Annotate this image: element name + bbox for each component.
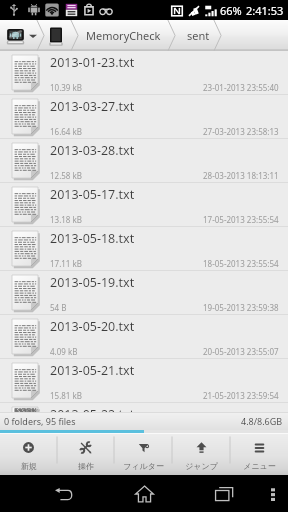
button[interactable]: MemoryCheck — [81, 20, 166, 51]
staticText: 2013-05-17.txt — [50, 186, 135, 203]
button[interactable]: 2013-03-28.txt — [0, 139, 288, 183]
button[interactable]: フィルター — [114, 434, 172, 475]
staticText: 2013-05-21.txt — [50, 362, 135, 379]
button[interactable]: ジャンプ — [172, 434, 230, 475]
button[interactable]: 2013-01-23.txt — [0, 51, 288, 95]
button[interactable]: 新規 — [0, 434, 57, 475]
staticText: 操作 — [78, 461, 94, 471]
button[interactable]: Back — [46, 479, 82, 509]
button[interactable]: 2013-05-17.txt — [0, 183, 288, 227]
button[interactable]: More options — [262, 479, 284, 509]
staticText: 4.09 kB — [50, 346, 78, 357]
staticText: 2013-03-27.txt — [50, 98, 135, 115]
staticText: 0 folders, 95 files — [4, 415, 76, 427]
staticText: ジャンプ — [185, 461, 218, 471]
staticText: 2013-05-18.txt — [50, 230, 135, 247]
staticText: 新規 — [21, 461, 37, 471]
staticText: 16.64 kB — [50, 126, 82, 137]
button[interactable]: Device storage — [48, 25, 64, 47]
button[interactable]: 2013-05-18.txt — [0, 227, 288, 271]
button[interactable]: メニュー — [230, 434, 288, 475]
button[interactable]: 操作 — [57, 434, 114, 475]
staticText: 66% — [220, 3, 242, 18]
staticText: MemoryCheck — [86, 28, 161, 43]
button[interactable]: Choose storage — [27, 30, 38, 41]
staticText: 2013-03-28.txt — [50, 142, 135, 159]
staticText: 19-05-2013 23:59:38 — [203, 302, 279, 313]
staticText: sent — [187, 28, 210, 43]
staticText: 18-05-2013 23:55:54 — [203, 258, 279, 269]
button[interactable]: 2013-05-19.txt — [0, 271, 288, 315]
staticText: 2:41:53 — [246, 3, 284, 18]
staticText: 27-03-2013 23:58:13 — [203, 126, 279, 137]
staticText: フィルター — [123, 461, 164, 471]
staticText: 9.21 kB — [50, 434, 78, 443]
button[interactable]: 2013-05-21.txt — [0, 359, 288, 403]
staticText: 2013-05-20.txt — [50, 318, 135, 335]
button[interactable]: Storage root — [5, 26, 25, 46]
staticText: 54 B — [50, 302, 67, 313]
staticText: 15.81 kB — [50, 390, 82, 401]
button[interactable]: Recent apps — [206, 479, 242, 509]
button[interactable]: Home — [126, 479, 162, 509]
staticText: メニュー — [243, 461, 276, 471]
staticText: 20-05-2013 23:55:07 — [203, 346, 279, 357]
staticText: 4.8/8.6GB — [241, 415, 283, 427]
staticText: 10.39 kB — [50, 82, 82, 93]
staticText: 2013-01-23.txt — [50, 54, 135, 71]
staticText: 28-03-2013 18:13:11 — [203, 170, 279, 181]
staticText: 17.11 kB — [50, 258, 82, 269]
staticText: 23-01-2013 23:55:40 — [203, 82, 279, 93]
staticText: 21-05-2013 23:59:54 — [203, 390, 279, 401]
button[interactable]: sent — [180, 20, 216, 51]
button[interactable]: 2013-05-20.txt — [0, 315, 288, 359]
staticText: 17-05-2013 23:55:54 — [203, 214, 279, 225]
staticText: 2013-05-19.txt — [50, 274, 135, 291]
staticText: 13.18 kB — [50, 214, 82, 225]
staticText: 2013-05-22.txt — [50, 406, 135, 415]
button[interactable]: 2013-05-22.txt — [0, 403, 288, 413]
staticText: 12.58 kB — [50, 170, 82, 181]
button[interactable]: 2013-03-27.txt — [0, 95, 288, 139]
